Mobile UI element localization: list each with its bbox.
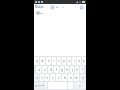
button[interactable]: e <box>46 57 51 65</box>
staticText: s <box>44 68 46 72</box>
staticText: q <box>36 59 38 63</box>
button[interactable]: Notes <box>35 5 44 9</box>
button[interactable]: b <box>62 74 67 81</box>
button[interactable]: Enter <box>74 82 86 89</box>
staticText: u <box>68 59 70 63</box>
staticText: t <box>58 59 60 63</box>
staticText: p <box>83 59 85 63</box>
staticText: k <box>76 68 78 72</box>
staticText: a <box>38 68 40 72</box>
staticText: ?123 <box>39 84 44 87</box>
staticText: m <box>75 76 78 80</box>
button[interactable]: Backspace <box>80 74 86 81</box>
button[interactable]: n <box>68 74 73 81</box>
staticText: l <box>82 68 83 72</box>
button[interactable]: , <box>45 82 47 89</box>
staticText: z <box>41 76 43 80</box>
staticText: y <box>63 59 65 63</box>
button[interactable]: q <box>34 57 39 65</box>
button[interactable]: u <box>67 57 71 65</box>
button[interactable]: w <box>40 57 45 65</box>
staticText: n <box>70 76 72 80</box>
staticText: e <box>48 59 50 63</box>
button[interactable]: l <box>80 66 84 73</box>
button[interactable]: h <box>65 66 69 73</box>
staticText: c <box>52 76 54 80</box>
staticText: r <box>53 59 55 63</box>
staticText: , <box>46 84 47 88</box>
button[interactable]: t <box>57 57 61 65</box>
staticText: o <box>78 59 80 63</box>
button[interactable]: s <box>42 66 47 73</box>
button[interactable]: p <box>82 57 86 65</box>
staticText: j <box>72 68 73 72</box>
button[interactable]: j <box>70 66 74 73</box>
button[interactable]: y <box>62 57 66 65</box>
button[interactable]: Shift <box>34 74 39 81</box>
button[interactable]: Switch keyboard <box>34 82 38 89</box>
button[interactable]: i <box>72 57 76 65</box>
button[interactable]: Undo <box>55 5 60 10</box>
button[interactable]: g <box>60 66 64 73</box>
button[interactable]: m <box>74 74 79 81</box>
staticText: i <box>74 59 75 63</box>
button[interactable]: Redo <box>60 5 65 10</box>
staticText: f <box>56 68 57 72</box>
button[interactable]: k <box>75 66 79 73</box>
staticText: d <box>50 68 52 72</box>
button[interactable]: f <box>54 66 59 73</box>
button[interactable]: x <box>45 74 49 81</box>
staticText: b <box>64 76 66 80</box>
button[interactable]: More options <box>79 5 84 10</box>
staticText: w <box>41 59 44 63</box>
staticText: x <box>46 76 48 80</box>
button[interactable]: r <box>52 57 56 65</box>
staticText: h <box>66 68 68 72</box>
staticText: Notes <box>35 5 44 9</box>
button[interactable]: o <box>77 57 81 65</box>
button[interactable]: ?123 <box>39 82 44 89</box>
button[interactable]: Checklist <box>50 5 55 10</box>
button[interactable]: z <box>40 74 44 81</box>
staticText: v <box>58 76 60 80</box>
staticText: . <box>70 84 71 88</box>
button[interactable]: v <box>56 74 61 81</box>
button[interactable]: c <box>50 74 55 81</box>
button[interactable]: d <box>48 66 53 73</box>
button[interactable]: a <box>36 66 41 73</box>
button[interactable]: . <box>68 82 73 89</box>
staticText: g <box>61 68 63 72</box>
